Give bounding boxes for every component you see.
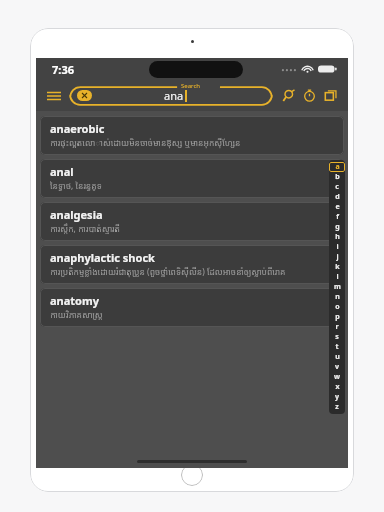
staticText: anal [50, 164, 74, 179]
staticText: e [335, 202, 340, 212]
button[interactable]: k [329, 262, 345, 272]
staticText: anatomy [50, 293, 99, 308]
staticText: w [334, 372, 340, 382]
staticText: v [335, 362, 339, 372]
button[interactable]: anaphylactic shock [40, 245, 344, 284]
staticText: o [335, 302, 340, 312]
staticText: ការផុះល្អតលោាស់ដោយមិនចាច់មានឱុស្ស ឬមានអុ… [50, 137, 241, 149]
button[interactable]: History [299, 85, 320, 106]
button[interactable]: d [329, 192, 345, 202]
staticText: a [335, 162, 340, 172]
button[interactable]: analgesia [40, 202, 344, 241]
staticText: n [335, 292, 340, 302]
button[interactable]: anal [40, 159, 344, 198]
staticText: x [335, 382, 340, 392]
button[interactable]: i [329, 242, 345, 252]
staticText: នៃទ្វាថ, នៃរន្ធគូទ [50, 180, 102, 192]
button[interactable]: Advanced search [278, 85, 299, 106]
staticText: j [336, 252, 339, 262]
staticText: ការស្កឹក, ការបាត់ស្មារតី [50, 223, 120, 235]
staticText: ការប្រតិកម្មខ្លាំងដោយរំជាតុប្រូន (ពួចថ្ន… [50, 266, 286, 278]
staticText: Search [181, 82, 200, 90]
button[interactable]: anatomy [40, 288, 344, 327]
staticText: 7:36 [52, 62, 74, 77]
staticText: b [335, 172, 340, 182]
button[interactable]: w [329, 372, 345, 382]
button[interactable]: x [329, 382, 345, 392]
button[interactable]: n [329, 292, 345, 302]
button[interactable]: r [329, 322, 345, 332]
button[interactable]: p [329, 312, 345, 322]
button[interactable]: j [329, 252, 345, 262]
staticText: i [336, 242, 339, 252]
button[interactable]: s [329, 332, 345, 342]
button[interactable]: v [329, 362, 345, 372]
staticText: d [335, 192, 340, 202]
staticText: ana [164, 88, 184, 103]
button[interactable]: c [329, 182, 345, 192]
staticText: l [336, 272, 339, 282]
staticText: p [335, 312, 340, 322]
staticText: r [335, 322, 339, 332]
staticText: c [335, 182, 339, 192]
staticText: m [334, 282, 341, 292]
staticText: anaerobic [50, 121, 105, 136]
button[interactable]: z [329, 402, 345, 412]
button[interactable]: o [329, 302, 345, 312]
staticText: anaphylactic shock [50, 250, 155, 265]
staticText: y [335, 392, 339, 402]
button[interactable]: m [329, 282, 345, 292]
staticText: h [335, 232, 340, 242]
staticText: k [335, 262, 340, 272]
button[interactable]: f [329, 212, 345, 222]
button[interactable]: g [329, 222, 345, 232]
button[interactable]: e [329, 202, 345, 212]
button[interactable]: anaerobic [40, 116, 344, 155]
staticText: កាយវិភាគសាស្រ្ត [50, 309, 103, 321]
button[interactable]: u [329, 352, 345, 362]
button[interactable]: y [329, 392, 345, 402]
button[interactable]: h [329, 232, 345, 242]
button[interactable]: l [329, 272, 345, 282]
button[interactable]: Bookmarks [320, 85, 341, 106]
staticText: t [335, 342, 339, 352]
staticText: z [335, 402, 339, 412]
staticText: s [335, 332, 339, 342]
staticText: g [335, 222, 340, 232]
button[interactable]: Clear search [77, 90, 92, 101]
staticText: u [335, 352, 340, 362]
button[interactable]: a [329, 162, 345, 172]
staticText: analgesia [50, 207, 103, 222]
button[interactable]: t [329, 342, 345, 352]
button[interactable]: b [329, 172, 345, 182]
staticText: f [336, 212, 339, 222]
button[interactable]: Open navigation menu [43, 85, 65, 107]
